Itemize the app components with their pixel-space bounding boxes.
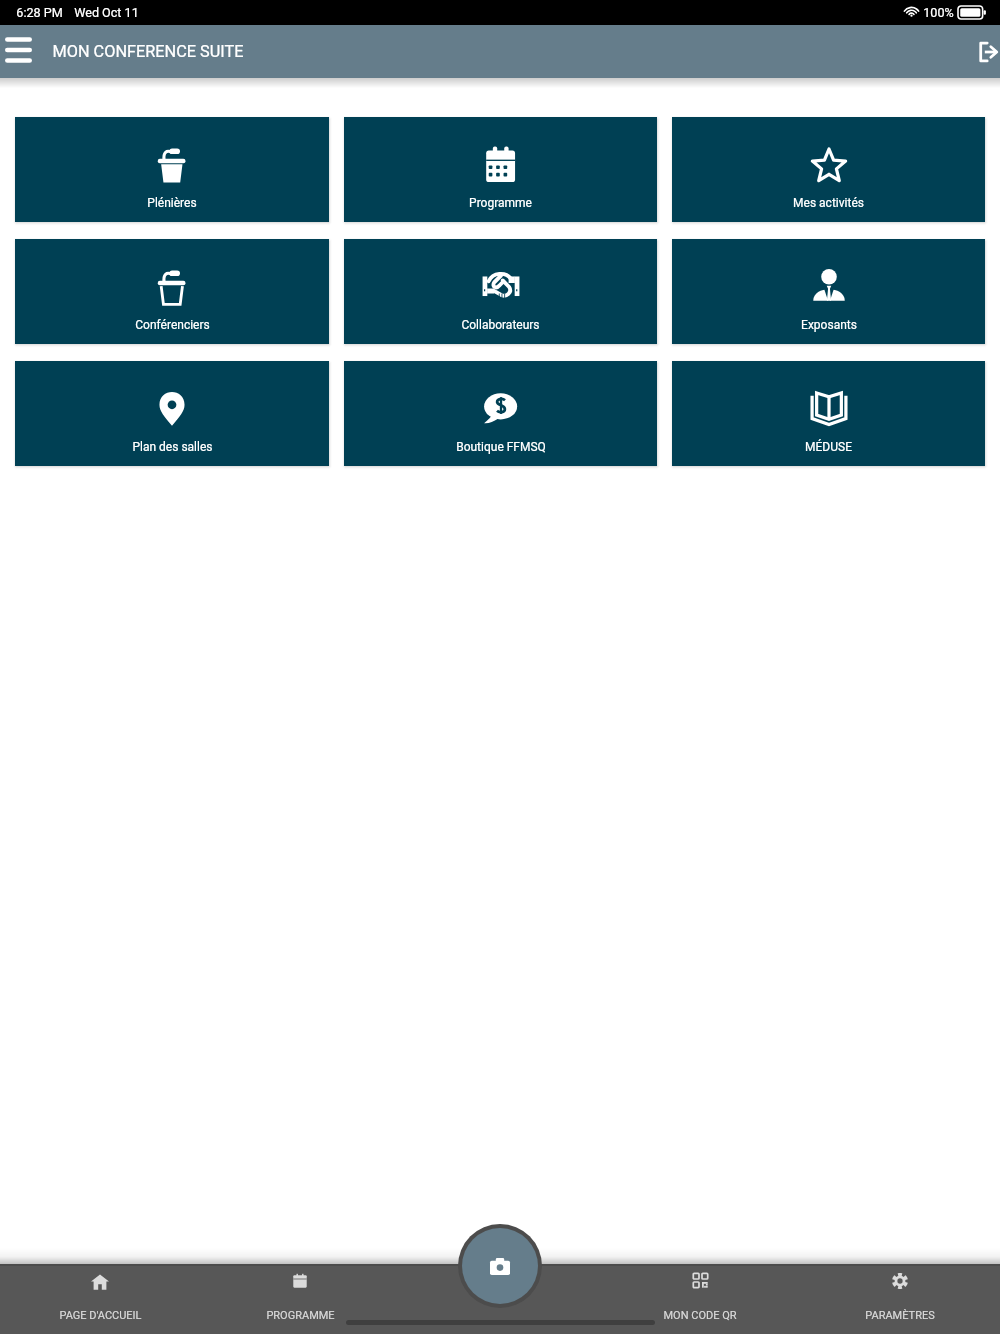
staticText: Mes activités <box>793 196 864 210</box>
staticText: 6:28 PM <box>16 5 63 20</box>
button[interactable]: Boutique FFMSQ <box>344 361 657 466</box>
staticText: PARAMÈTRES <box>865 1309 935 1322</box>
button[interactable]: Conférenciers <box>15 239 329 344</box>
staticText: Exposants <box>801 318 857 332</box>
button[interactable]: Plan des salles <box>15 361 329 466</box>
button[interactable]: MÉDUSE <box>672 361 985 466</box>
staticText: Programme <box>469 196 532 210</box>
staticText: Plénières <box>147 196 197 210</box>
button[interactable]: Camera <box>462 1228 538 1304</box>
button[interactable]: Menu <box>5 37 32 63</box>
button[interactable]: PAGE D'ACCUEIL <box>0 1264 200 1334</box>
button[interactable]: Mes activités <box>672 117 985 222</box>
staticText: MON CODE QR <box>663 1309 737 1322</box>
staticText: MÉDUSE <box>805 440 852 454</box>
button[interactable]: Plénières <box>15 117 329 222</box>
button[interactable]: Exposants <box>672 239 985 344</box>
button[interactable]: MON CODE QR <box>600 1264 800 1334</box>
staticText: Wed Oct 11 <box>74 5 139 20</box>
staticText: Plan des salles <box>132 440 213 454</box>
staticText: PROGRAMME <box>266 1309 335 1322</box>
staticText: Boutique FFMSQ <box>456 440 546 454</box>
button[interactable]: Logout <box>974 40 998 62</box>
staticText: PAGE D'ACCUEIL <box>59 1309 142 1322</box>
button[interactable]: Collaborateurs <box>344 239 657 344</box>
staticText: Collaborateurs <box>461 318 540 332</box>
staticText: MON CONFERENCE SUITE <box>52 42 244 61</box>
staticText: Conférenciers <box>135 318 210 332</box>
button[interactable]: PARAMÈTRES <box>800 1264 1000 1334</box>
staticText: 100% <box>923 5 954 20</box>
button[interactable]: PROGRAMME <box>200 1264 400 1334</box>
button[interactable]: Programme <box>344 117 657 222</box>
